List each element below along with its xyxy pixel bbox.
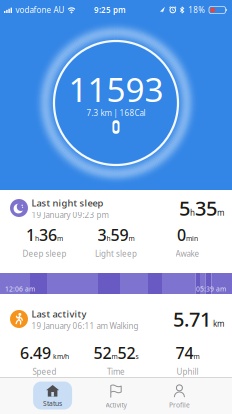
button[interactable]: Status (33, 381, 72, 409)
staticText: 5h35m (179, 195, 224, 221)
button[interactable]: Last activity (0, 296, 232, 373)
staticText: 18% (188, 5, 205, 15)
staticText: 11593 (68, 67, 163, 111)
staticText: 05:39 am (196, 285, 226, 293)
staticText: Status (43, 399, 62, 408)
button[interactable]: Activity (91, 382, 141, 412)
button[interactable]: Last night sleep (0, 190, 232, 266)
staticText: Light sleep (95, 248, 137, 259)
staticText: vodafone AU (15, 5, 64, 15)
staticText: 6.49 km/h (20, 342, 69, 363)
staticText: Uphill (176, 366, 198, 377)
staticText: Time (107, 366, 125, 377)
staticText: 9:25 pm (94, 5, 126, 15)
staticText: Deep sleep (22, 248, 66, 259)
staticText: 1h36m (26, 224, 63, 245)
staticText: Activity (105, 401, 126, 409)
staticText: 5.71 km (173, 306, 224, 332)
staticText: 19 January 06:11 am Walking (31, 321, 138, 331)
staticText: Awake (175, 248, 199, 259)
button[interactable]: Profile (154, 382, 204, 412)
staticText: Last activity (31, 308, 86, 320)
staticText: Speed (32, 366, 56, 377)
staticText: Last night sleep (31, 197, 103, 209)
staticText: 0min (177, 224, 198, 245)
staticText: 3h59m (97, 224, 134, 245)
staticText: Profile (169, 401, 190, 409)
staticText: 7.3 km | 168Cal (86, 108, 145, 118)
staticText: 52m52s (93, 342, 138, 363)
staticText: 19 January 09:23 pm (31, 210, 108, 220)
staticText: 12:06 am (5, 285, 35, 293)
staticText: 74m (175, 342, 199, 363)
